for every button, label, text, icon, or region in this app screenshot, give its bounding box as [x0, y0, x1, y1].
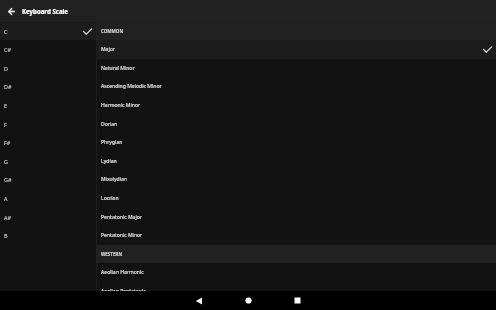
button[interactable]: Major	[96, 40, 496, 59]
staticText: A#	[4, 214, 11, 221]
button[interactable]: Natural Minor	[96, 59, 496, 77]
button[interactable]: D#	[0, 77, 96, 96]
button[interactable]: D	[0, 59, 96, 77]
staticText: Major	[101, 46, 115, 53]
staticText: WESTERN	[101, 251, 123, 257]
button[interactable]: Phrygian	[96, 133, 496, 152]
button[interactable]: Lydian	[96, 152, 496, 170]
staticText: E	[4, 102, 7, 109]
staticText: Phrygian	[101, 139, 123, 146]
staticText: Dorian	[101, 121, 118, 128]
button[interactable]: B	[0, 226, 96, 245]
staticText: Pentatonic Major	[101, 214, 142, 221]
button[interactable]: Locrian	[96, 189, 496, 208]
button[interactable]: Recent apps	[289, 292, 306, 309]
button[interactable]: Aeolian Pentatonic	[96, 282, 496, 301]
staticText: Ascending Melodic Minor	[101, 83, 162, 90]
staticText: A	[4, 195, 8, 202]
staticText: F#	[4, 139, 11, 146]
button[interactable]: F#	[0, 133, 96, 152]
staticText: Harmonic Minor	[101, 102, 141, 109]
staticText: COMMON	[101, 28, 124, 34]
button[interactable]: Home	[240, 292, 257, 309]
staticText: B	[4, 232, 8, 239]
button[interactable]: C	[0, 22, 96, 40]
staticText: C#	[4, 46, 11, 53]
staticText: C	[4, 28, 8, 35]
staticText: Mixolydian	[101, 176, 127, 183]
button[interactable]: Harmonic Minor	[96, 96, 496, 115]
staticText: G#	[4, 176, 12, 183]
staticText: G	[4, 158, 8, 165]
staticText: Pentatonic Minor	[101, 232, 143, 239]
staticText: Keyboard Scale	[22, 7, 68, 15]
button[interactable]: Mixolydian	[96, 170, 496, 189]
staticText: D	[4, 65, 8, 72]
staticText: Aeolian Pentatonic	[101, 288, 146, 295]
button[interactable]: Algerian	[96, 301, 496, 310]
button[interactable]: Pentatonic Minor	[96, 226, 496, 245]
button[interactable]: Ascending Melodic Minor	[96, 77, 496, 96]
staticText: Locrian	[101, 195, 119, 202]
staticText: Aeolian Harmonic	[101, 269, 144, 276]
button[interactable]: F	[0, 115, 96, 133]
button[interactable]: G#	[0, 170, 96, 189]
button[interactable]: A#	[0, 208, 96, 226]
button[interactable]: G	[0, 152, 96, 170]
button[interactable]: Navigate up	[0, 0, 22, 22]
button[interactable]: Back	[190, 292, 207, 309]
button[interactable]: C#	[0, 40, 96, 59]
staticText: D#	[4, 83, 12, 90]
button[interactable]: A	[0, 189, 96, 208]
button[interactable]: E	[0, 96, 96, 115]
staticText: F	[4, 121, 7, 128]
staticText: Lydian	[101, 158, 117, 165]
button[interactable]: Aeolian Harmonic	[96, 263, 496, 282]
staticText: Natural Minor	[101, 65, 135, 72]
button[interactable]: Dorian	[96, 115, 496, 133]
button[interactable]: Pentatonic Major	[96, 208, 496, 226]
